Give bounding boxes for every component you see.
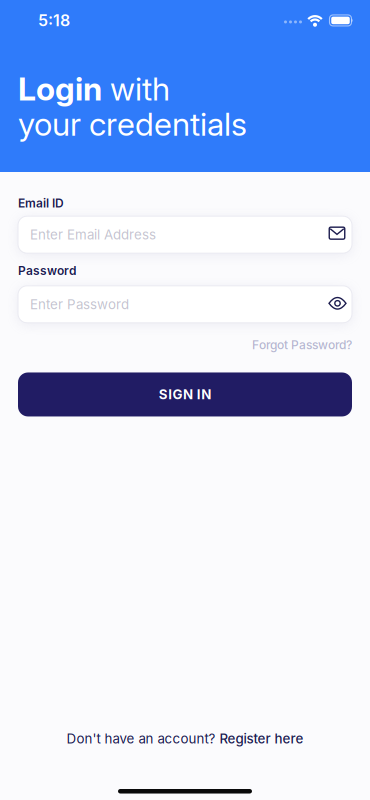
staticText: Login with — [18, 70, 170, 108]
staticText: Password — [18, 264, 76, 278]
button[interactable]: Forgot Password? — [252, 338, 352, 352]
staticText: Enter Email Address — [30, 227, 156, 242]
staticText: SIGN IN — [159, 387, 211, 402]
button[interactable]: Enter Password — [18, 286, 352, 323]
button[interactable]: SIGN IN — [18, 372, 352, 416]
staticText: Don't have an account? Register here — [66, 731, 303, 746]
staticText: your credentials — [18, 105, 247, 143]
staticText: 5:18 — [38, 11, 70, 30]
staticText: Forgot Password? — [252, 338, 352, 352]
button[interactable]: Don't have an account? Register here — [66, 731, 303, 746]
staticText: Email ID — [18, 196, 64, 210]
staticText: Enter Password — [30, 296, 129, 312]
button[interactable]: Enter Email Address — [18, 216, 352, 253]
